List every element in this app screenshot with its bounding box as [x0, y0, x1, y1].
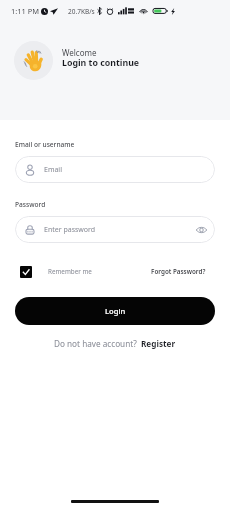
- staticText: 1:11 PM: [11, 6, 40, 16]
- staticText: Welcome: [62, 47, 97, 58]
- button[interactable]: Login: [15, 297, 215, 325]
- staticText: Login: [105, 306, 126, 316]
- staticText: Email: [44, 165, 62, 175]
- staticText: Login to continue: [62, 57, 140, 69]
- button[interactable]: Register: [141, 338, 176, 349]
- button[interactable]: Show password: [196, 224, 207, 235]
- staticText: Forgot Password?: [151, 267, 206, 276]
- staticText: Remember me: [48, 267, 92, 276]
- button[interactable]: Email: [15, 156, 215, 183]
- button[interactable]: Remember me: [15, 265, 92, 277]
- staticText: Password: [15, 200, 46, 209]
- staticText: 20.7KB/s: [68, 7, 95, 16]
- staticText: Do not have account?: [54, 338, 137, 349]
- staticText: Enter password: [44, 225, 96, 235]
- staticText: Email or username: [15, 140, 75, 149]
- button[interactable]: Enter password: [15, 216, 215, 243]
- button[interactable]: Forgot Password?: [151, 267, 206, 276]
- staticText: Register: [141, 338, 176, 349]
